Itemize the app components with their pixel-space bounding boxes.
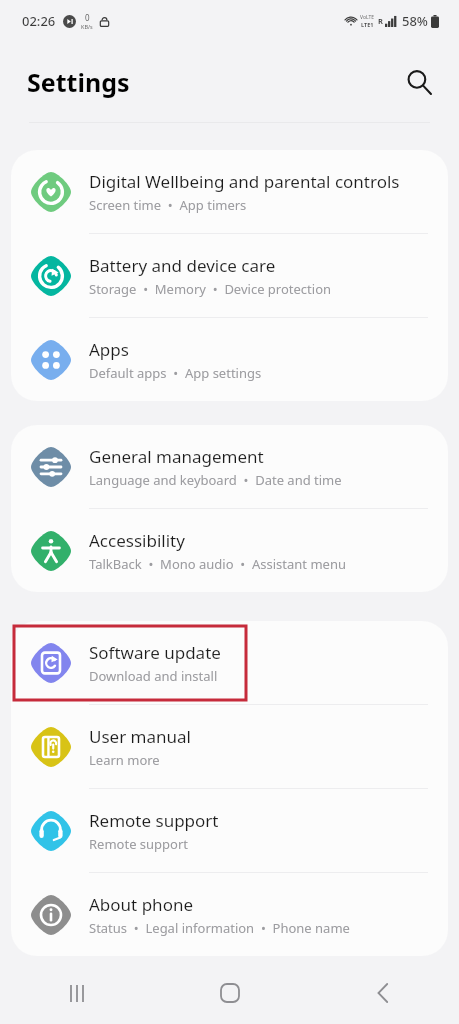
button[interactable]: Battery and device care	[11, 234, 448, 317]
staticText: KB/s	[81, 23, 93, 30]
staticText: Settings	[27, 65, 130, 99]
button[interactable]: Digital Wellbeing and parental controls	[11, 150, 448, 233]
staticText: Download and install	[89, 667, 218, 685]
staticText: Software update	[89, 641, 221, 664]
staticText: LTE1	[361, 21, 374, 28]
button[interactable]: About phone	[11, 873, 448, 956]
staticText: Remote support	[89, 835, 189, 853]
staticText: Remote support	[89, 809, 219, 832]
staticText: Screen time • App timers	[89, 196, 247, 214]
staticText: Digital Wellbeing and parental controls	[89, 170, 400, 193]
button[interactable]: Back	[306, 962, 459, 1024]
button[interactable]: Recent apps	[0, 962, 153, 1024]
button[interactable]: Apps	[11, 318, 448, 401]
staticText: Learn more	[89, 751, 160, 769]
staticText: Apps	[89, 338, 129, 361]
staticText: VoLTE	[360, 14, 375, 21]
staticText: Default apps • App settings	[89, 364, 262, 382]
button[interactable]: Remote support	[11, 789, 448, 872]
button[interactable]: Software update	[11, 621, 448, 704]
button[interactable]: Accessibility	[11, 509, 448, 592]
staticText: General management	[89, 445, 264, 468]
button[interactable]: User manual	[11, 705, 448, 788]
staticText: 0	[85, 12, 90, 23]
button[interactable]: General management	[11, 425, 448, 508]
staticText: TalkBack • Mono audio • Assistant menu	[89, 555, 346, 573]
button[interactable]: Home	[153, 962, 306, 1024]
button[interactable]: Search	[401, 64, 437, 100]
staticText: Language and keyboard • Date and time	[89, 471, 342, 489]
staticText: Battery and device care	[89, 254, 276, 277]
staticText: 02:26	[22, 12, 56, 30]
staticText: Status • Legal information • Phone name	[89, 919, 350, 937]
staticText: About phone	[89, 893, 194, 916]
staticText: R	[378, 16, 383, 26]
staticText: 58%	[402, 12, 428, 30]
staticText: Storage • Memory • Device protection	[89, 280, 332, 298]
staticText: User manual	[89, 725, 191, 748]
staticText: Accessibility	[89, 529, 185, 552]
